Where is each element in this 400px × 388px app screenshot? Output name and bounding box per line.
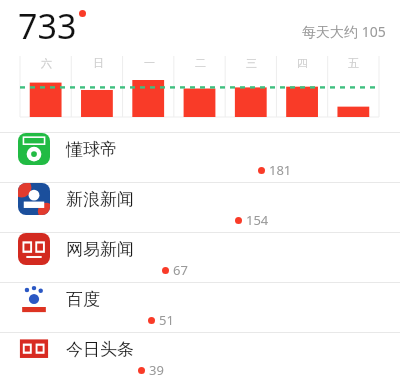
staticText: 39 <box>149 361 164 379</box>
staticText: 181 <box>269 161 292 179</box>
staticText: 一 <box>144 56 155 70</box>
staticText: 今日头条 <box>66 339 134 360</box>
staticText: 154 <box>246 211 269 229</box>
staticText: 新浪新闻 <box>66 189 134 210</box>
staticText: 67 <box>173 261 188 279</box>
staticText: 三 <box>246 56 257 70</box>
button[interactable]: 新浪新闻 <box>0 182 400 232</box>
staticText: 网易新闻 <box>66 239 134 260</box>
button[interactable]: 今日头条 <box>0 332 400 382</box>
staticText: 每天大约 105 <box>302 22 386 41</box>
staticText: 四 <box>297 56 308 70</box>
staticText: 日 <box>93 56 104 70</box>
staticText: 六 <box>41 56 52 70</box>
staticText: 二 <box>195 56 206 70</box>
button[interactable]: 网易新闻 <box>0 232 400 282</box>
staticText: 733 <box>18 3 77 49</box>
staticText: 五 <box>348 56 359 70</box>
staticText: 百度 <box>66 289 100 310</box>
staticText: 51 <box>159 311 174 329</box>
button[interactable]: 懂球帝 <box>0 132 400 182</box>
staticText: 懂球帝 <box>66 139 117 160</box>
button[interactable]: 百度 <box>0 282 400 332</box>
